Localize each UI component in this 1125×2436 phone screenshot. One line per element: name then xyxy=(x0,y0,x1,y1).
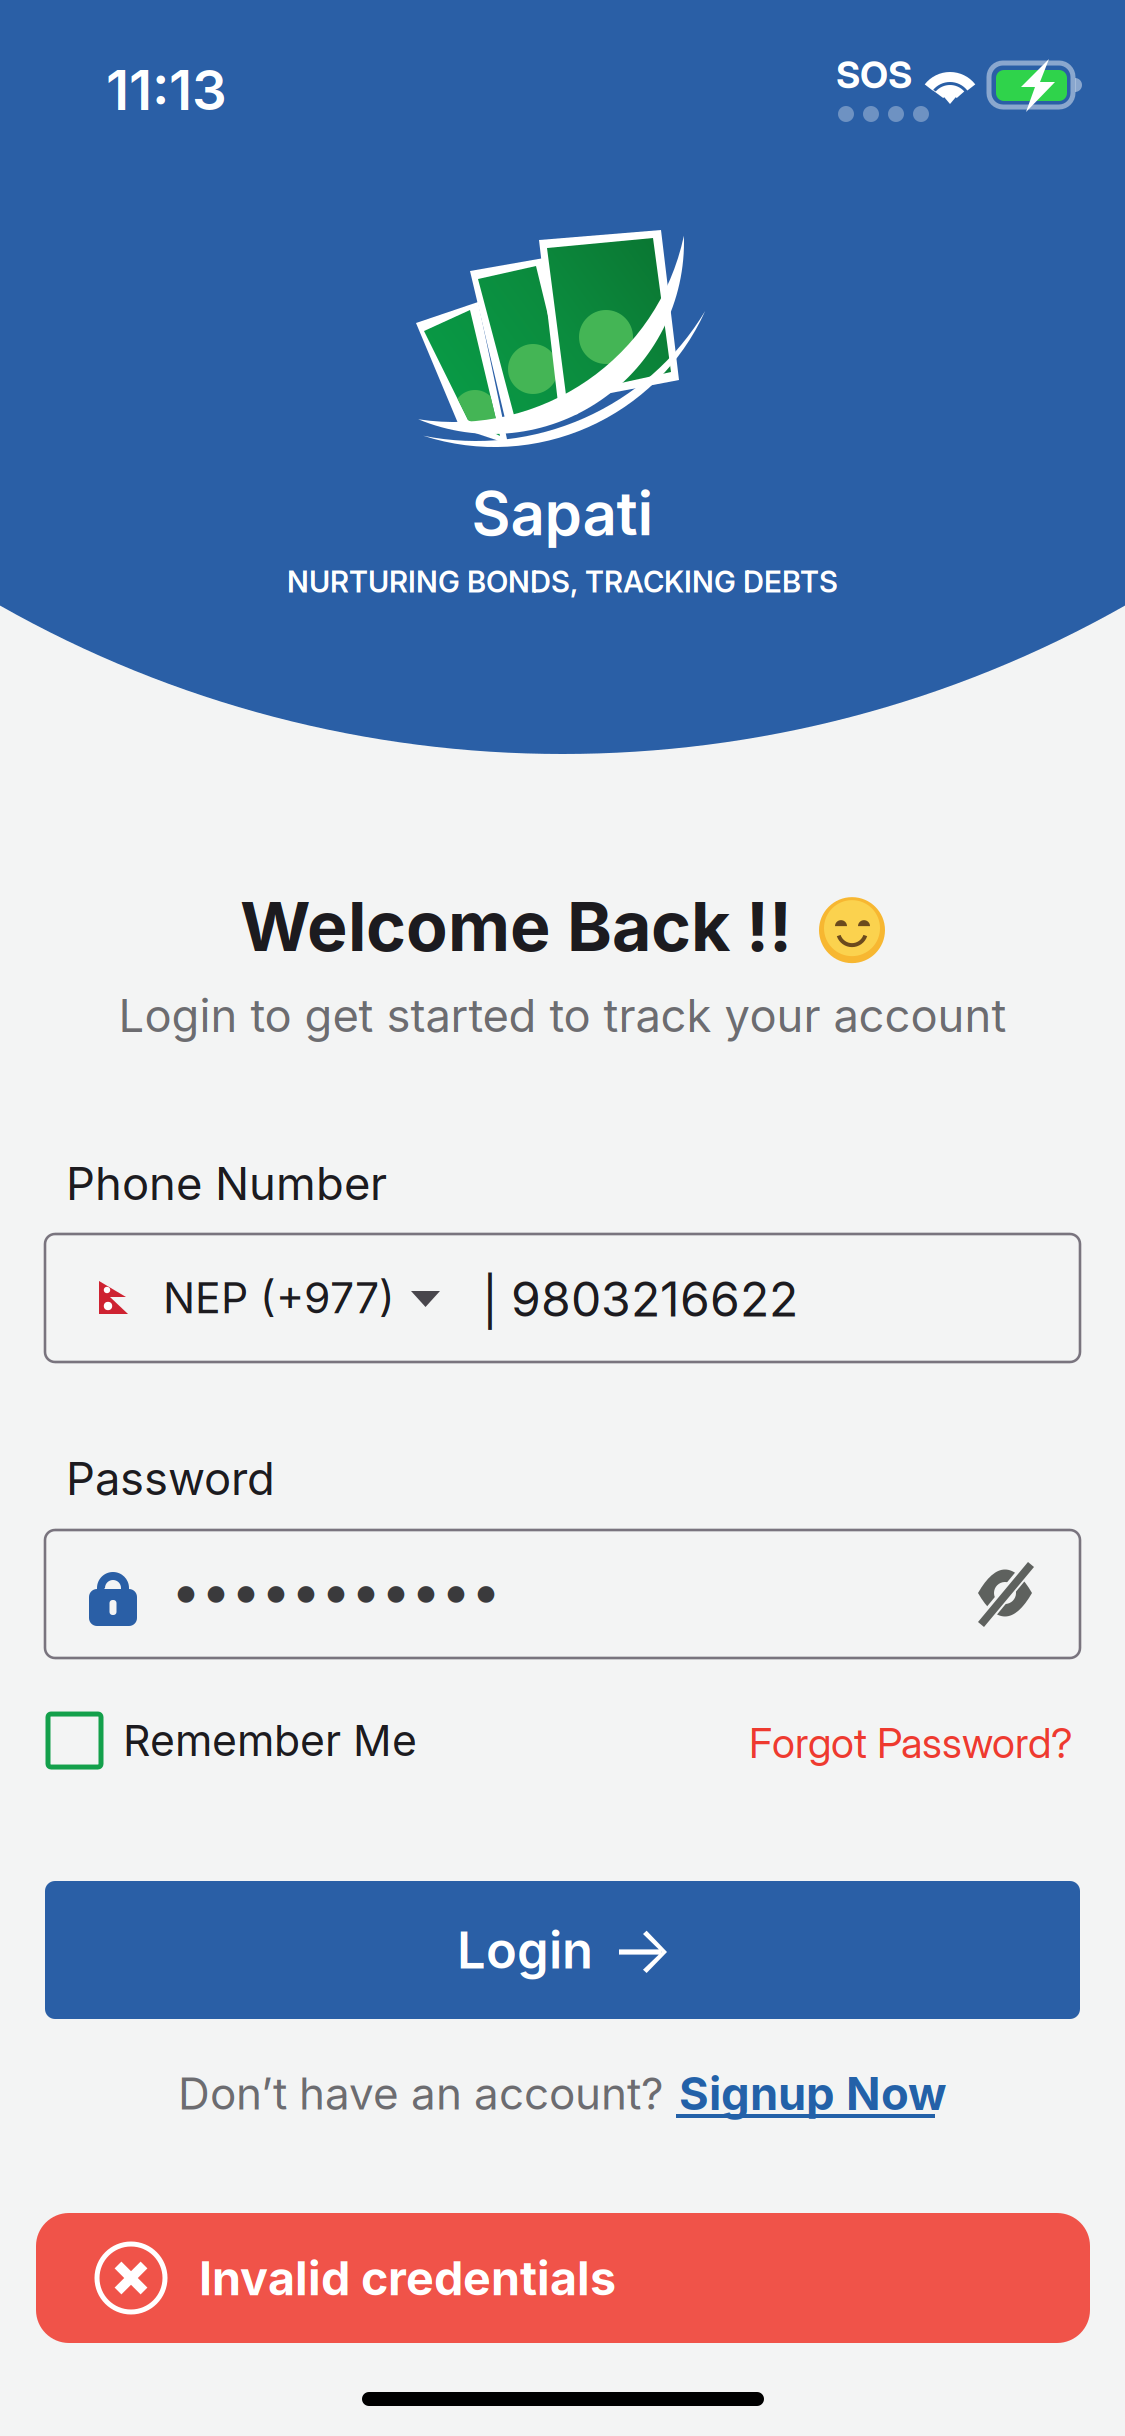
staticText: NURTURING BONDS, TRACKING DEBTS xyxy=(287,564,838,599)
staticText: Login to get started to track your accou… xyxy=(118,988,1006,1043)
staticText: ••••••••••• xyxy=(171,1558,501,1622)
staticText: Forgot Password? xyxy=(749,1718,1073,1768)
staticText: | xyxy=(482,1272,498,1330)
staticText: SOS xyxy=(836,52,912,97)
staticText: Phone Number xyxy=(66,1156,387,1211)
staticText: Password xyxy=(66,1451,275,1506)
staticText: Don’t have an account? xyxy=(178,2067,663,2120)
button[interactable]: Don’t have an account? xyxy=(178,2066,947,2121)
button[interactable]: Forgot Password? xyxy=(749,1718,1073,1768)
staticText: Signup Now xyxy=(679,2066,947,2121)
staticText: Invalid credentials xyxy=(199,2250,616,2306)
staticText: NEP (+977) xyxy=(163,1272,395,1324)
staticText: 11:13 xyxy=(106,57,227,123)
staticText: Sapati xyxy=(471,477,653,550)
staticText: Welcome Back !! xyxy=(240,885,792,967)
staticText: 9803216622 xyxy=(511,1270,798,1328)
button[interactable]: Remember Me xyxy=(48,1714,417,1767)
button[interactable]: ••••••••••• xyxy=(45,1530,1080,1658)
staticText: Login xyxy=(457,1919,593,1981)
button[interactable]: NEP (+977) xyxy=(45,1234,1080,1362)
staticText: Remember Me xyxy=(123,1715,417,1766)
button[interactable]: Login xyxy=(45,1881,1080,2019)
